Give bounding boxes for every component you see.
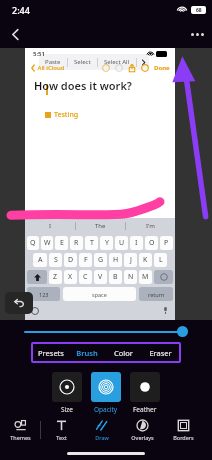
button[interactable]: T: [85, 236, 98, 250]
staticText: Overlays: [131, 434, 154, 441]
button[interactable]: S: [49, 253, 62, 267]
staticText: Z: [53, 272, 58, 282]
button[interactable]: F: [79, 253, 92, 267]
staticText: Brush: [76, 348, 98, 358]
button[interactable]: K: [139, 253, 152, 267]
staticText: A: [38, 255, 43, 265]
button[interactable]: Select All: [104, 58, 130, 66]
staticText: U: [119, 238, 125, 248]
staticText: B: [113, 272, 118, 282]
button[interactable]: Back: [0, 20, 30, 48]
button[interactable]: C: [79, 270, 92, 284]
staticText: Eraser: [149, 348, 172, 358]
button[interactable]: I: [25, 218, 75, 233]
button[interactable]: Select: [74, 58, 91, 66]
staticText: How does it work?: [34, 78, 132, 93]
button[interactable]: Size: [52, 372, 82, 414]
button[interactable]: Presets: [33, 342, 69, 363]
button[interactable]: X: [64, 270, 77, 284]
button[interactable]: B: [109, 270, 122, 284]
button[interactable]: N: [124, 270, 137, 284]
button[interactable]: Q: [27, 236, 39, 250]
button[interactable]: L: [154, 253, 167, 267]
staticText: L: [159, 255, 163, 265]
staticText: Color: [114, 348, 133, 358]
button[interactable]: M: [139, 270, 152, 284]
button[interactable]: U: [115, 236, 128, 250]
staticText: H: [113, 255, 119, 265]
button[interactable]: Eraser: [142, 342, 179, 363]
button[interactable]: Backspace: [154, 270, 173, 284]
button[interactable]: V: [94, 270, 107, 284]
staticText: X: [68, 272, 73, 282]
button[interactable]: The: [76, 218, 125, 233]
staticText: Size: [61, 405, 73, 414]
staticText: M: [142, 272, 149, 282]
staticText: 2:44: [12, 4, 30, 16]
staticText: I: [135, 238, 138, 248]
button[interactable]: R: [70, 236, 83, 250]
button[interactable]: [0, 320, 212, 342]
staticText: F: [84, 255, 88, 265]
button[interactable]: Shift: [27, 270, 47, 284]
staticText: O: [149, 238, 155, 248]
staticText: return: [148, 291, 165, 298]
staticText: V: [98, 272, 103, 282]
staticText: Select: [74, 58, 91, 66]
staticText: Paste: [45, 58, 61, 66]
button[interactable]: O: [145, 236, 158, 250]
button[interactable]: E: [55, 236, 68, 250]
staticText: Text: [56, 434, 67, 441]
button[interactable]: I: [130, 236, 143, 250]
button[interactable]: Overlays: [122, 414, 163, 446]
staticText: Testing: [54, 110, 79, 120]
button[interactable]: Emoji: [31, 307, 39, 315]
button[interactable]: Brush: [69, 342, 105, 363]
button[interactable]: Text: [41, 414, 81, 446]
button[interactable]: Share: [128, 64, 136, 72]
staticText: R: [74, 238, 79, 248]
button[interactable]: W: [41, 236, 53, 250]
button[interactable]: Done: [154, 64, 170, 72]
button[interactable]: Opacity: [91, 372, 121, 414]
button[interactable]: Numbers: [27, 287, 60, 301]
staticText: S: [54, 255, 58, 265]
staticText: N: [128, 272, 134, 282]
button[interactable]: P: [160, 236, 173, 250]
button[interactable]: Borders: [163, 414, 204, 446]
button[interactable]: Undo: [5, 292, 33, 314]
button[interactable]: Y: [100, 236, 113, 250]
staticText: Select All: [104, 58, 130, 66]
button[interactable]: H: [109, 253, 122, 267]
button[interactable]: More: [137, 54, 149, 70]
button[interactable]: D: [64, 253, 77, 267]
staticText: Feather: [133, 405, 157, 414]
button[interactable]: All iCloud: [30, 64, 65, 72]
staticText: I: [49, 222, 52, 230]
staticText: Y: [105, 238, 109, 248]
button[interactable]: I'm: [126, 218, 175, 233]
staticText: K: [143, 255, 148, 265]
button[interactable]: space: [63, 287, 136, 301]
button[interactable]: A: [33, 253, 47, 267]
button[interactable]: Color: [105, 342, 142, 363]
button[interactable]: Themes: [0, 414, 40, 446]
button[interactable]: Return: [139, 287, 173, 301]
button[interactable]: Draw: [81, 414, 122, 446]
staticText: The: [95, 222, 106, 230]
button[interactable]: Z: [49, 270, 62, 284]
staticText: 123: [39, 291, 49, 298]
staticText: Q: [30, 238, 36, 248]
button[interactable]: Dictate: [162, 307, 169, 314]
staticText: C: [83, 272, 88, 282]
staticText: Draw: [95, 434, 109, 441]
button[interactable]: Feather: [130, 372, 160, 414]
button[interactable]: More options: [182, 20, 212, 48]
button[interactable]: J: [124, 253, 137, 267]
staticText: W: [44, 238, 51, 248]
button[interactable]: Paste: [45, 58, 61, 66]
staticText: T: [90, 238, 94, 248]
staticText: Borders: [173, 434, 194, 441]
staticText: Presets: [38, 348, 64, 358]
button[interactable]: G: [94, 253, 107, 267]
